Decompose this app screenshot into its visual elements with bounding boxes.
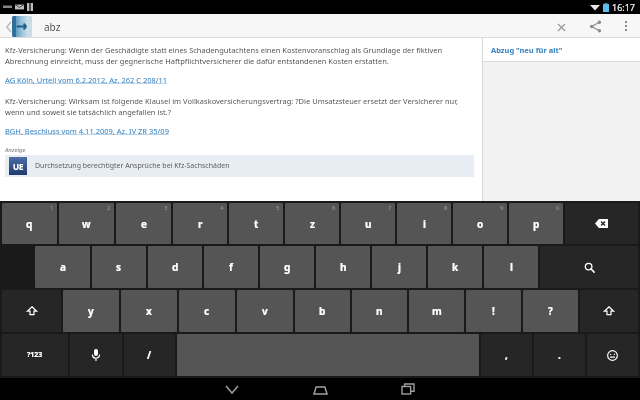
button[interactable]: f — [204, 246, 258, 288]
button[interactable]: b — [295, 290, 350, 332]
staticText: Anzeige — [5, 146, 26, 154]
button[interactable]: / — [124, 334, 175, 376]
staticText: 9 — [500, 204, 504, 212]
button[interactable]: BGH, Beschluss vom 4.11.2009, Az. IV ZR … — [5, 126, 169, 136]
button[interactable]: m — [409, 290, 464, 332]
button[interactable]: s — [92, 246, 146, 288]
button[interactable]: 2 — [59, 203, 114, 244]
staticText: Abzug "neu für alt" — [491, 45, 563, 55]
button[interactable]: Navigate up — [0, 14, 38, 38]
staticText: UE — [13, 161, 24, 172]
button[interactable]: 8 — [397, 203, 451, 244]
staticText: 16:17 — [612, 1, 636, 13]
staticText: abz — [44, 20, 61, 34]
button[interactable]: 5 — [229, 203, 283, 244]
button[interactable]: Abzug "neu für alt" — [491, 38, 640, 61]
staticText: . — [558, 348, 561, 362]
button[interactable]: Home — [305, 378, 335, 400]
button[interactable]: g — [260, 246, 314, 288]
staticText: h — [340, 260, 347, 274]
staticText: j — [398, 260, 401, 274]
button[interactable]: Share — [578, 14, 612, 38]
button[interactable]: 0 — [509, 203, 563, 244]
staticText: BGH, Beschluss vom 4.11.2009, Az. IV ZR … — [5, 126, 169, 136]
staticText: Kfz-Versicherung: Wenn der Geschädigte s… — [5, 45, 474, 66]
staticText: 8 — [444, 204, 448, 212]
staticText: t — [254, 217, 259, 231]
staticText: r — [198, 217, 203, 231]
staticText: 3 — [164, 204, 168, 212]
button[interactable]: y — [63, 290, 119, 332]
staticText: q — [26, 217, 33, 231]
staticText: l — [510, 260, 513, 274]
button[interactable]: , — [481, 334, 532, 376]
button[interactable]: ! — [466, 290, 521, 332]
staticText: 0 — [556, 204, 560, 212]
button[interactable]: 4 — [173, 203, 227, 244]
button[interactable]: UE — [5, 155, 474, 177]
staticText: c — [204, 304, 210, 318]
button[interactable]: 9 — [453, 203, 507, 244]
button[interactable]: Search — [540, 246, 638, 288]
button[interactable]: h — [316, 246, 370, 288]
staticText: s — [116, 260, 122, 274]
staticText: AG Köln, Urteil vom 6.2.2012, Az. 262 C … — [5, 75, 168, 85]
staticText: e — [141, 217, 147, 231]
staticText: z — [310, 217, 315, 231]
button[interactable]: d — [148, 246, 202, 288]
staticText: 6 — [332, 204, 336, 212]
button[interactable]: Shift — [2, 290, 61, 332]
staticText: 4 — [220, 204, 224, 212]
staticText: Kfz-Versicherung: Wirksam ist folgende K… — [5, 96, 474, 117]
button[interactable]: AG Köln, Urteil vom 6.2.2012, Az. 262 C … — [5, 75, 168, 85]
staticText: f — [229, 260, 233, 274]
button[interactable]: 3 — [116, 203, 171, 244]
button[interactable]: abz — [44, 14, 568, 38]
button[interactable]: Shift — [580, 290, 638, 332]
button[interactable]: 1 — [2, 203, 57, 244]
button[interactable]: n — [352, 290, 407, 332]
staticText: b — [319, 304, 326, 318]
staticText: p — [533, 217, 540, 231]
staticText: a — [60, 260, 66, 274]
button[interactable]: c — [179, 290, 235, 332]
staticText: ? — [548, 304, 553, 318]
staticText: i — [423, 217, 426, 231]
button[interactable]: x — [121, 290, 177, 332]
staticText: y — [88, 304, 94, 318]
staticText: ! — [492, 304, 495, 318]
button[interactable]: Recent apps — [393, 378, 423, 400]
button[interactable]: Clear search — [554, 20, 568, 34]
button[interactable]: More options — [612, 14, 640, 38]
button[interactable]: 7 — [341, 203, 395, 244]
staticText: u — [365, 217, 372, 231]
button[interactable]: Hide keyboard — [217, 378, 247, 400]
button[interactable]: Voice input — [70, 334, 122, 376]
button[interactable]: . — [534, 334, 585, 376]
staticText: x — [146, 304, 152, 318]
staticText: , — [505, 348, 508, 362]
button[interactable]: v — [237, 290, 293, 332]
button[interactable]: a — [35, 246, 90, 288]
staticText: w — [82, 217, 91, 231]
button[interactable]: 6 — [285, 203, 339, 244]
staticText: d — [172, 260, 179, 274]
staticText: o — [477, 217, 484, 231]
button[interactable]: l — [484, 246, 538, 288]
staticText: ?123 — [27, 350, 43, 360]
button[interactable]: Backspace — [565, 203, 638, 244]
button[interactable]: Emoji — [587, 334, 638, 376]
staticText: Durchsetzung berechtigter Ansprüche bei … — [35, 161, 230, 171]
staticText: 1 — [50, 204, 54, 212]
staticText: m — [432, 304, 442, 318]
button[interactable]: ? — [523, 290, 578, 332]
staticText: g — [284, 260, 291, 274]
staticText: 7 — [388, 204, 392, 212]
staticText: / — [147, 348, 152, 362]
button[interactable]: ?123 — [2, 334, 68, 376]
button[interactable]: j — [372, 246, 426, 288]
staticText: 5 — [276, 204, 280, 212]
staticText: v — [262, 304, 268, 318]
button[interactable]: k — [428, 246, 482, 288]
